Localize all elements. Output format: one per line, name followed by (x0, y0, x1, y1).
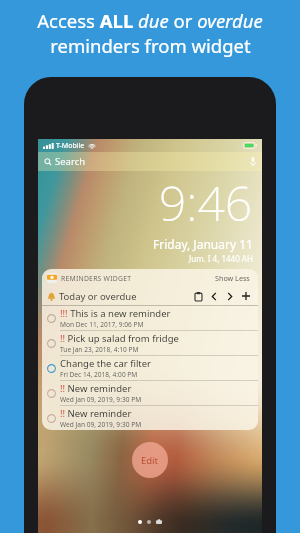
staticText: reminders from widget (50, 33, 251, 58)
staticText: Search (55, 155, 86, 168)
staticText: Access ALL due or overdue (37, 8, 263, 33)
button[interactable]: Camera (156, 519, 162, 525)
staticText: Jum. I 4, 1440 AH (189, 253, 253, 264)
button[interactable]: Previous (207, 289, 221, 303)
staticText: Tue Jan 23, 2018, 4:10 PM (60, 345, 139, 354)
staticText: Wed Jan 09, 2019, 9:30 PM (60, 395, 142, 404)
button[interactable]: Add reminder (239, 289, 253, 303)
button[interactable]: Page 2 (147, 520, 151, 524)
button[interactable]: Search (38, 152, 262, 171)
button[interactable]: !! Pick up salad from fridge (42, 331, 258, 355)
staticText: Edit (141, 454, 159, 467)
staticText: Wed Jan 09, 2019, 9:30 PM (60, 420, 142, 429)
button[interactable]: Show Less (213, 271, 252, 285)
staticText: Show Less (215, 273, 250, 283)
button[interactable]: Page 1 (138, 520, 142, 524)
staticText: !! New reminder (60, 407, 132, 420)
staticText: Change the car filter (60, 357, 152, 370)
button[interactable]: Edit (132, 442, 168, 478)
button[interactable]: !! New reminder (42, 381, 258, 405)
button[interactable]: !!! This is a new reminder (42, 306, 258, 330)
button[interactable]: Change the car filter (42, 356, 258, 380)
staticText: !!! This is a new reminder (60, 307, 171, 320)
staticText: Mon Dec 11, 2017, 9:06 PM (60, 320, 144, 329)
staticText: Fri Dec 14, 2018, 4:00 PM (60, 370, 138, 379)
staticText: Today or overdue (59, 290, 137, 303)
staticText: !! New reminder (60, 382, 132, 395)
staticText: T-Mobile (56, 141, 85, 151)
staticText: 9:46 (159, 170, 253, 235)
button[interactable]: Next (223, 289, 237, 303)
staticText: Friday, January 11 (153, 236, 253, 252)
staticText: REMINDERS WIDGET (61, 274, 132, 283)
button[interactable]: !! New reminder (42, 406, 258, 430)
staticText: !! Pick up salad from fridge (60, 332, 179, 345)
button[interactable]: Lists (191, 289, 205, 303)
